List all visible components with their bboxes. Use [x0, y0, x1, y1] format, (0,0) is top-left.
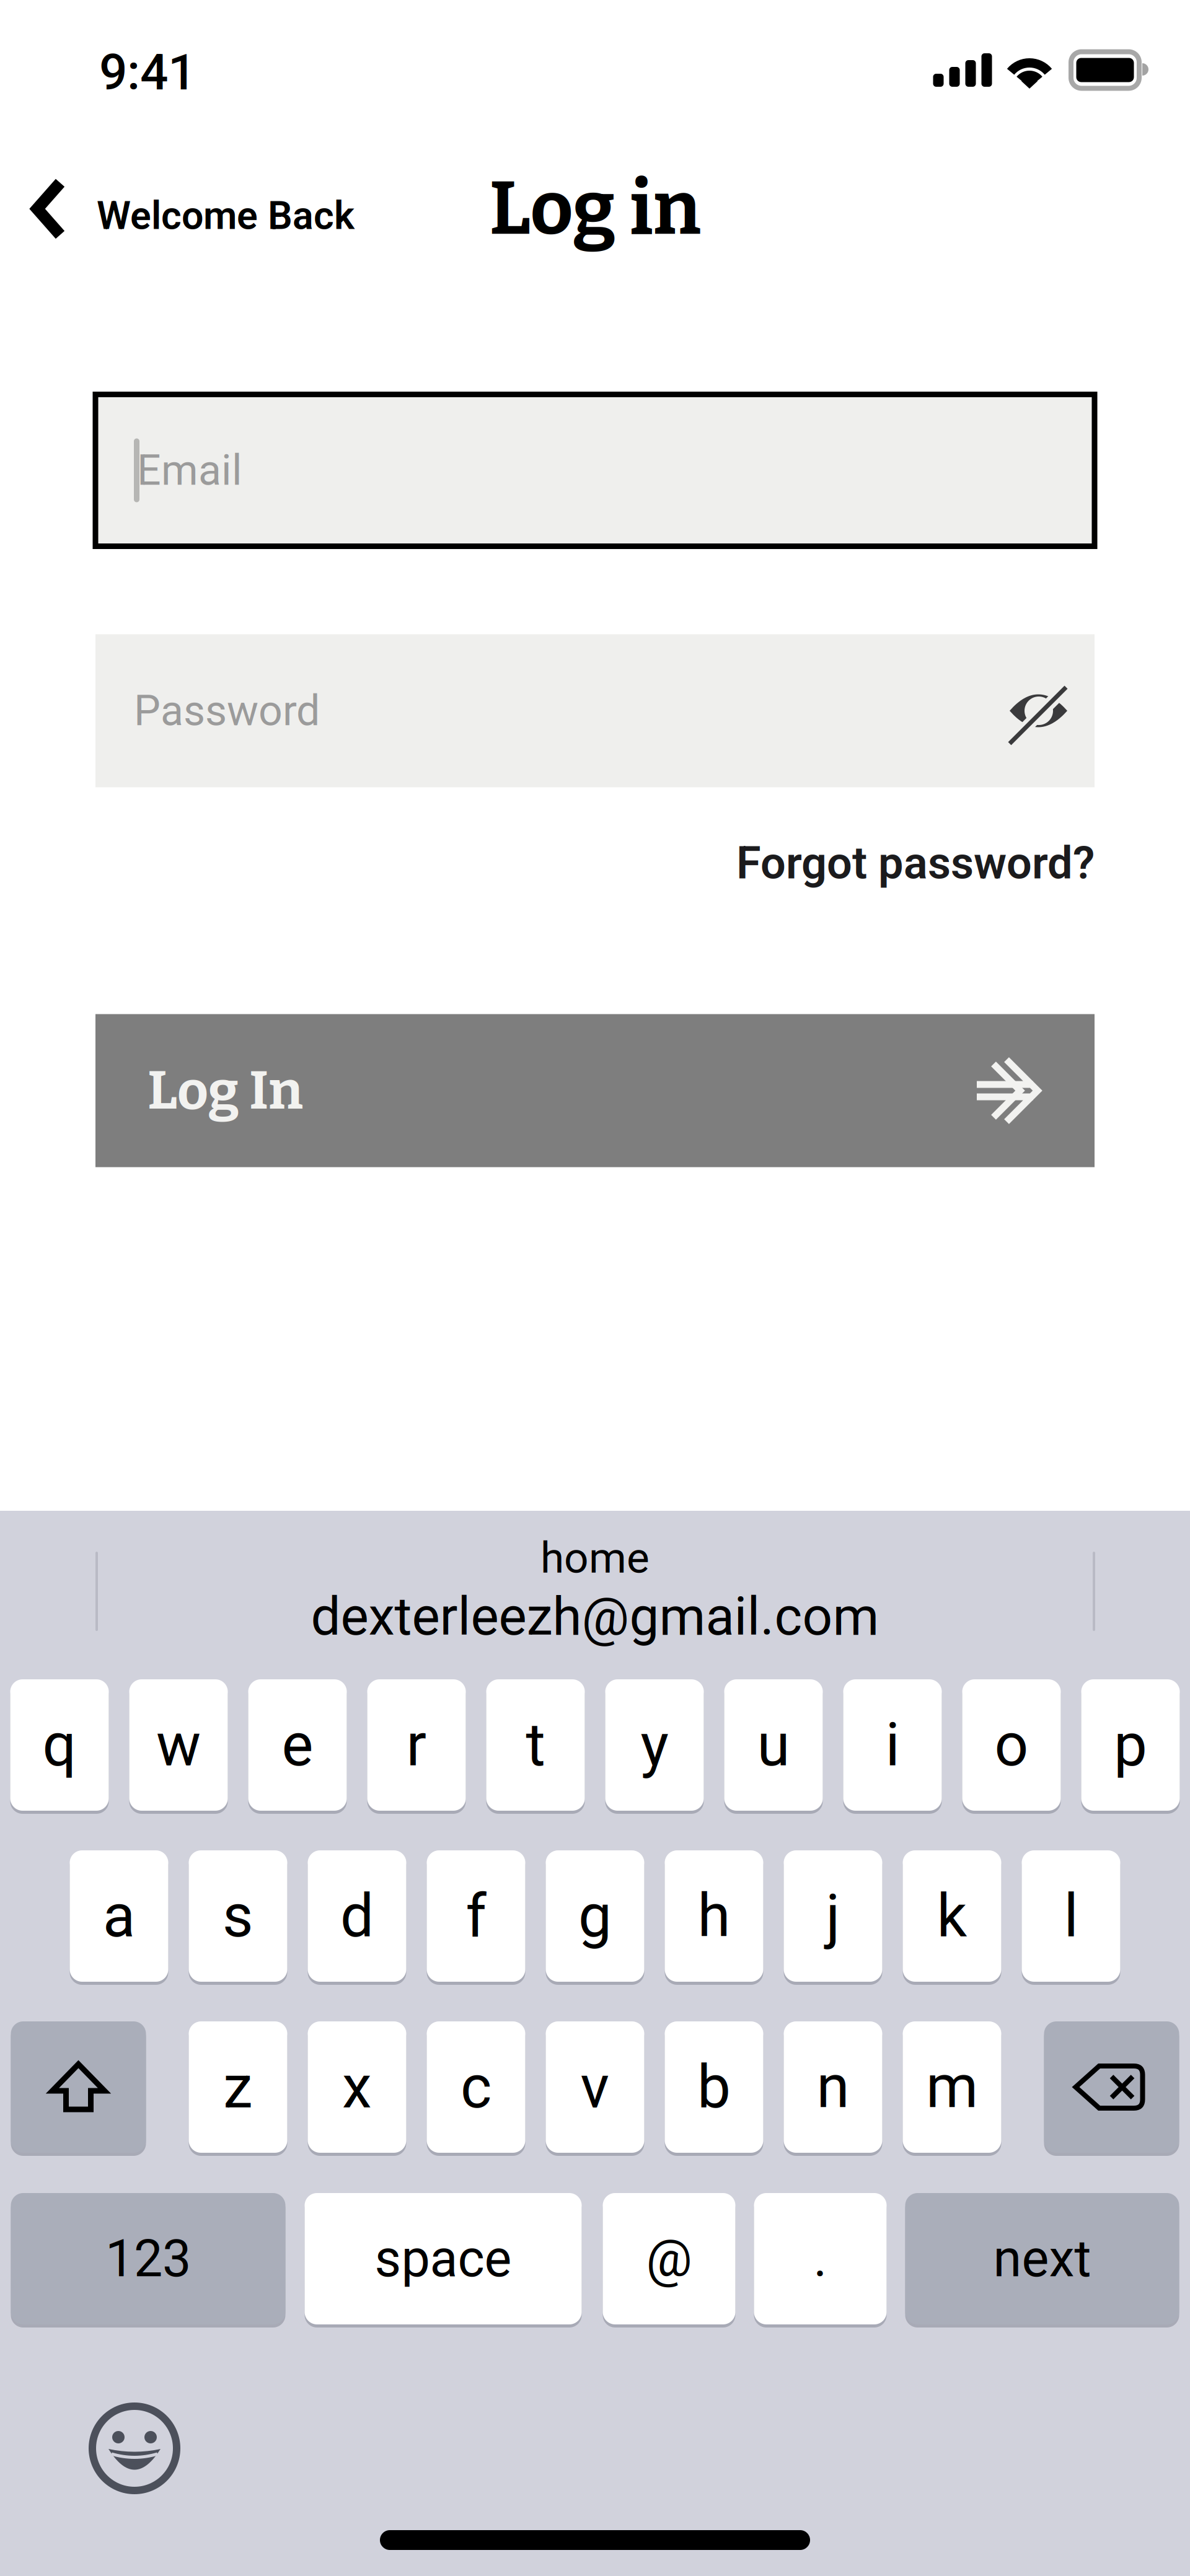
- staticText: space: [375, 2229, 512, 2289]
- staticText: home: [540, 1533, 650, 1583]
- staticText: next: [993, 2229, 1091, 2289]
- button[interactable]: b: [665, 2020, 763, 2154]
- button[interactable]: g: [546, 1849, 644, 1983]
- staticText: l: [1064, 1881, 1078, 1951]
- staticText: f: [466, 1881, 486, 1951]
- staticText: o: [994, 1710, 1029, 1780]
- button[interactable]: 123: [11, 2191, 285, 2326]
- button[interactable]: Welcome Back: [0, 169, 1190, 263]
- button[interactable]: @: [603, 2191, 735, 2326]
- button[interactable]: .: [754, 2191, 887, 2326]
- button[interactable]: z: [189, 2020, 287, 2154]
- button[interactable]: t: [486, 1678, 585, 1812]
- staticText: x: [342, 2052, 372, 2122]
- staticText: y: [641, 1710, 668, 1780]
- staticText: k: [937, 1881, 967, 1951]
- staticText: u: [757, 1710, 790, 1780]
- staticText: j: [826, 1881, 840, 1951]
- staticText: r: [406, 1710, 427, 1780]
- button[interactable]: space: [305, 2191, 582, 2326]
- staticText: 9:41: [99, 43, 196, 102]
- button[interactable]: Emoji keyboard: [85, 2399, 184, 2498]
- button[interactable]: f: [427, 1849, 525, 1983]
- staticText: d: [340, 1881, 374, 1951]
- staticText: Forgot password?: [736, 837, 1095, 889]
- button[interactable]: w: [129, 1678, 228, 1812]
- staticText: .: [813, 2229, 827, 2289]
- staticText: a: [103, 1881, 135, 1951]
- staticText: s: [223, 1881, 253, 1951]
- button[interactable]: u: [724, 1678, 823, 1812]
- button[interactable]: h: [665, 1849, 763, 1983]
- button[interactable]: a: [70, 1849, 168, 1983]
- staticText: b: [697, 2052, 731, 2122]
- button[interactable]: o: [962, 1678, 1061, 1812]
- button[interactable]: e: [248, 1678, 347, 1812]
- button[interactable]: s: [189, 1849, 287, 1983]
- staticText: m: [926, 2052, 978, 2122]
- staticText: t: [526, 1710, 545, 1780]
- button[interactable]: p: [1081, 1678, 1180, 1812]
- button[interactable]: l: [1022, 1849, 1120, 1983]
- staticText: e: [282, 1710, 313, 1780]
- staticText: v: [580, 2052, 610, 2122]
- button[interactable]: Show password: [997, 665, 1082, 757]
- staticText: p: [1114, 1710, 1147, 1780]
- button[interactable]: j: [784, 1849, 882, 1983]
- button[interactable]: i: [843, 1678, 942, 1812]
- staticText: Email: [137, 446, 242, 495]
- button[interactable]: Delete: [1044, 2020, 1179, 2154]
- staticText: @: [646, 2229, 692, 2289]
- button[interactable]: Forgot password?: [0, 826, 1190, 901]
- button[interactable]: v: [546, 2020, 644, 2154]
- button[interactable]: c: [427, 2020, 525, 2154]
- staticText: g: [578, 1881, 612, 1951]
- staticText: Welcome Back: [97, 193, 355, 238]
- staticText: i: [885, 1710, 900, 1780]
- button[interactable]: next: [905, 2191, 1179, 2326]
- staticText: Password: [134, 686, 320, 735]
- button[interactable]: q: [10, 1678, 109, 1812]
- button[interactable]: m: [903, 2020, 1001, 2154]
- button[interactable]: Log In: [95, 1014, 1095, 1167]
- staticText: n: [817, 2052, 849, 2122]
- button[interactable]: k: [903, 1849, 1001, 1983]
- staticText: Log In: [148, 1058, 303, 1123]
- staticText: q: [42, 1710, 77, 1780]
- button[interactable]: Shift: [11, 2020, 146, 2154]
- staticText: w: [156, 1710, 201, 1780]
- staticText: h: [698, 1881, 730, 1951]
- staticText: c: [461, 2052, 491, 2122]
- staticText: z: [223, 2052, 253, 2122]
- button[interactable]: x: [308, 2020, 406, 2154]
- staticText: dexterleezh@gmail.com: [311, 1586, 879, 1647]
- button[interactable]: r: [367, 1678, 466, 1812]
- button[interactable]: n: [784, 2020, 882, 2154]
- staticText: 123: [105, 2229, 191, 2289]
- button[interactable]: y: [605, 1678, 704, 1812]
- staticText: Log in: [489, 164, 701, 253]
- button[interactable]: d: [308, 1849, 406, 1983]
